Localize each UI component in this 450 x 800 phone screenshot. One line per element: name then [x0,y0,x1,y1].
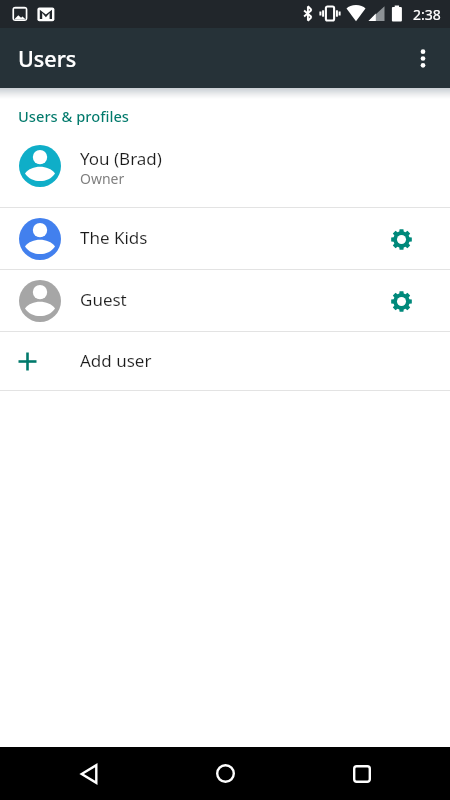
button[interactable]: Settings [377,277,425,325]
staticText: Add user [80,349,152,372]
staticText: 2:38 [413,5,441,24]
button[interactable]: Guest [0,270,450,331]
button[interactable]: Back [60,747,118,800]
button[interactable]: More options [399,34,447,82]
button[interactable]: The Kids [0,208,450,269]
button[interactable]: Settings [377,215,425,263]
staticText: Users & profiles [18,106,129,126]
button[interactable]: Recents [333,747,391,800]
staticText: Owner [80,169,125,188]
button[interactable]: You (Brad) [0,144,450,207]
staticText: Users [18,44,77,73]
button[interactable]: Add user [0,332,450,390]
staticText: The Kids [80,226,377,249]
button[interactable]: Home [196,747,254,800]
staticText: Guest [80,288,377,311]
staticText: You (Brad) [80,147,162,170]
